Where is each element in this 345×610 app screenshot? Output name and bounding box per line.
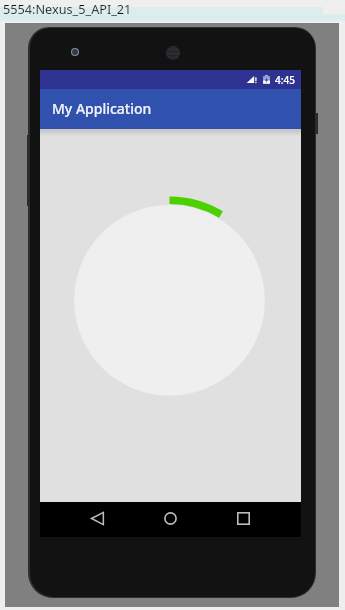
button[interactable]: Home bbox=[150, 501, 190, 536]
button[interactable]: Recent apps bbox=[223, 501, 263, 536]
staticText: My Application bbox=[52, 99, 152, 118]
staticText: 4:45 bbox=[275, 73, 295, 87]
staticText: 5554:Nexus_5_API_21 bbox=[3, 0, 132, 17]
button[interactable]: My Application bbox=[40, 89, 301, 129]
button[interactable]: Back bbox=[77, 501, 117, 536]
